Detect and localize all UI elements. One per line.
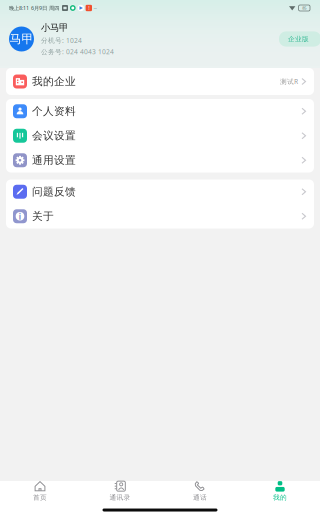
staticText: 关于 [32, 210, 54, 223]
button[interactable]: 会议设置 [6, 123, 314, 148]
staticText: 公务号: 024 4043 1024 [41, 47, 114, 56]
staticText: 通话 [193, 493, 207, 502]
button[interactable]: 通用设置 [6, 148, 314, 172]
staticText: ··· [94, 4, 97, 12]
button[interactable]: 通讯录 [80, 477, 160, 502]
staticText: 问题反馈 [32, 185, 76, 198]
button[interactable]: 首页 [0, 477, 80, 502]
staticText: 个人资料 [32, 105, 76, 118]
button[interactable]: 个人资料 [6, 99, 314, 123]
button[interactable]: 我的企业 [6, 68, 314, 95]
button[interactable]: 企业版 [269, 31, 311, 47]
staticText: 首页 [33, 493, 47, 502]
staticText: 小马甲 [41, 22, 68, 33]
staticText: 通用设置 [32, 154, 76, 167]
staticText: 通讯录 [109, 493, 130, 502]
staticText: ! [88, 4, 89, 12]
staticText: 会议设置 [32, 129, 76, 142]
staticText: 分机号: 1024 [41, 36, 82, 45]
staticText: 85 [302, 5, 306, 11]
staticText: 企业版 [288, 35, 309, 43]
staticText: 我的企业 [32, 75, 76, 88]
staticText: 晚上8:11 6月9日 周四 [9, 4, 59, 12]
button[interactable]: 马甲 [9, 22, 114, 56]
button[interactable]: i [6, 204, 314, 228]
button[interactable]: 问题反馈 [6, 179, 314, 204]
staticText: i [18, 210, 21, 222]
staticText: 测试R [280, 77, 298, 86]
button[interactable]: 我的 [240, 477, 320, 502]
button[interactable]: 通话 [160, 477, 240, 502]
staticText: 马甲 [9, 32, 33, 46]
staticText: 我的 [273, 493, 287, 502]
